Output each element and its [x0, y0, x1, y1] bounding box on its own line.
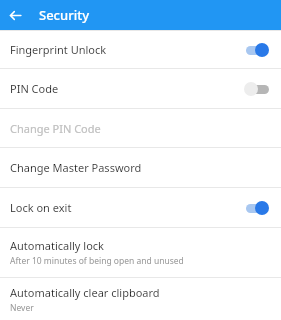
staticText: Never — [10, 302, 34, 314]
button[interactable]: Change Master Password — [0, 148, 281, 187]
button[interactable]: PIN Code toggle — [242, 81, 272, 97]
button[interactable]: Automatically lock — [0, 228, 281, 277]
button[interactable]: Automatically clear clipboard — [0, 278, 281, 320]
staticText: Fingerprint Unlock — [10, 42, 107, 57]
staticText: PIN Code — [10, 81, 59, 96]
staticText: Automatically clear clipboard — [10, 285, 160, 300]
button[interactable]: Back — [0, 0, 30, 30]
staticText: Security — [39, 6, 89, 24]
button[interactable]: Change PIN Code — [0, 109, 281, 147]
button[interactable]: PIN Code — [0, 69, 281, 108]
button[interactable]: Lock on exit toggle — [242, 200, 272, 216]
button[interactable]: Fingerprint Unlock — [0, 31, 281, 68]
staticText: Change PIN Code — [10, 121, 101, 136]
staticText: Automatically lock — [10, 238, 104, 253]
button[interactable]: Lock on exit — [0, 188, 281, 227]
button[interactable]: Fingerprint Unlock toggle — [242, 42, 272, 58]
staticText: Lock on exit — [10, 200, 72, 215]
staticText: After 10 minutes of being open and unuse… — [10, 255, 184, 267]
staticText: Change Master Password — [10, 160, 142, 175]
